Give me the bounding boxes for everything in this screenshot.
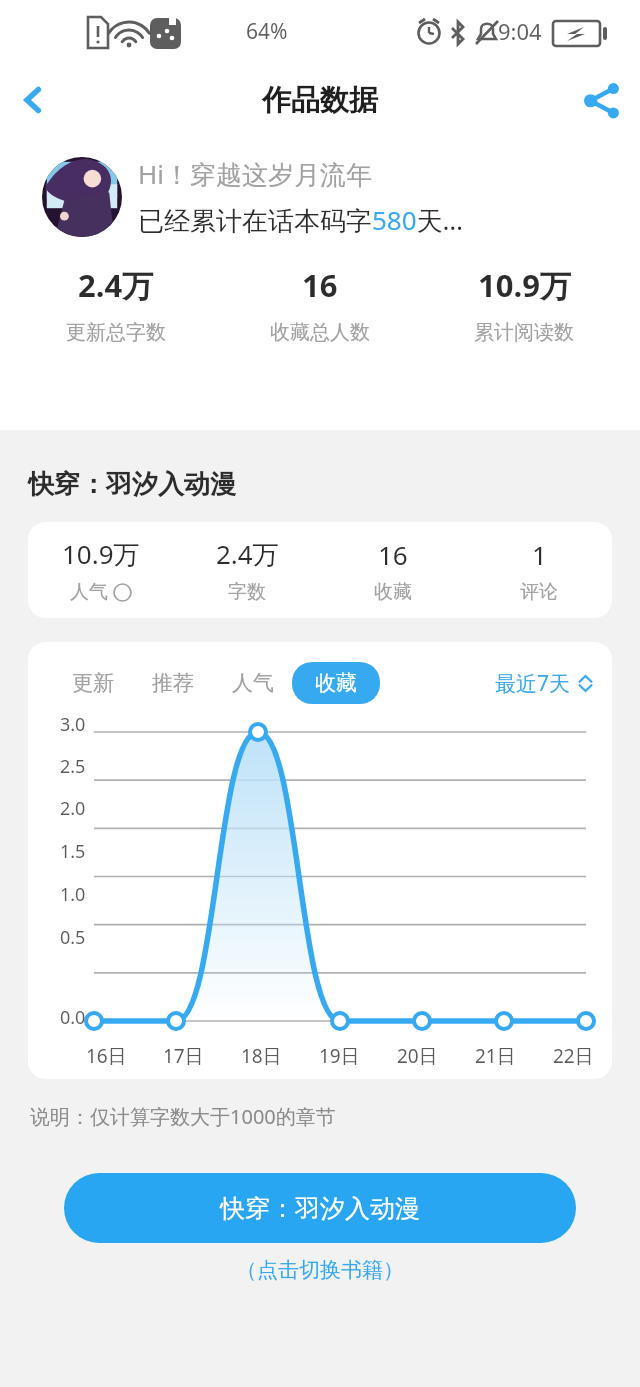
button[interactable]: 10.9万 [28, 536, 174, 604]
staticText: 2.5 [60, 754, 86, 779]
staticText: 人气 [232, 670, 274, 696]
button[interactable]: 收藏 [292, 662, 380, 704]
staticText: 作品数据 [262, 82, 378, 119]
staticText: 2.0 [60, 796, 86, 821]
button[interactable]: 快穿：羽汐入动漫 [64, 1173, 576, 1243]
staticText: 20日 [397, 1043, 438, 1069]
staticText: 17日 [163, 1043, 204, 1069]
staticText: 快穿：羽汐入动漫 [220, 1193, 420, 1224]
staticText: 人气 [70, 580, 108, 604]
staticText: （点击切换书籍） [236, 1257, 404, 1283]
staticText: 2.4万 [216, 536, 279, 572]
staticText: 累计阅读数 [474, 320, 574, 345]
staticText: 已经累计在话本码字580天… [138, 202, 464, 238]
button[interactable]: 2.4万 [14, 264, 218, 345]
staticText: 64% [246, 17, 288, 46]
staticText: 推荐 [152, 670, 194, 696]
button[interactable]: 2.4万 [174, 536, 320, 604]
staticText: 9:04 [498, 16, 542, 46]
staticText: 收藏 [374, 580, 412, 604]
button[interactable]: 更新 [72, 662, 114, 704]
staticText: 1 [532, 537, 547, 572]
staticText: 字数 [228, 580, 266, 604]
button[interactable]: 1 [466, 537, 612, 604]
button[interactable]: （点击切换书籍） [0, 1257, 640, 1283]
staticText: 10.9万 [478, 264, 571, 306]
staticText: 10.9万 [62, 536, 140, 572]
staticText: 说明：仅计算字数大于1000的章节 [30, 1103, 336, 1130]
staticText: 16 [378, 537, 408, 572]
staticText: 3.0 [60, 712, 86, 737]
staticText: 16 [302, 264, 338, 306]
staticText: 2.4万 [78, 264, 154, 306]
button[interactable]: Share [564, 62, 640, 138]
staticText: 更新总字数 [66, 320, 166, 345]
staticText: 更新 [72, 670, 114, 696]
staticText: Hi！穿越这岁月流年 [138, 156, 372, 192]
button[interactable]: 最近7天 [495, 669, 612, 698]
staticText: 0.0 [60, 1005, 86, 1030]
staticText: 1.0 [60, 882, 86, 907]
staticText: 收藏 [315, 670, 357, 696]
staticText: 21日 [475, 1043, 516, 1069]
staticText: 18日 [241, 1043, 282, 1069]
button[interactable]: 10.9万 [422, 264, 626, 345]
button[interactable]: 16 [320, 537, 466, 604]
staticText: 22日 [553, 1043, 594, 1069]
staticText: 收藏总人数 [270, 320, 370, 345]
staticText: 评论 [520, 580, 558, 604]
button[interactable]: 人气 [232, 662, 274, 704]
staticText: 最近7天 [495, 669, 571, 698]
button[interactable]: 推荐 [152, 662, 194, 704]
staticText: 19日 [319, 1043, 360, 1069]
staticText: 16日 [86, 1043, 127, 1069]
staticText: 1.5 [60, 839, 86, 864]
staticText: 快穿：羽汐入动漫 [28, 468, 236, 501]
button[interactable]: Back [0, 67, 66, 133]
staticText: 0.5 [60, 925, 86, 950]
button[interactable]: Hi！穿越这岁月流年 [42, 156, 640, 238]
button[interactable]: 16 [218, 264, 422, 345]
